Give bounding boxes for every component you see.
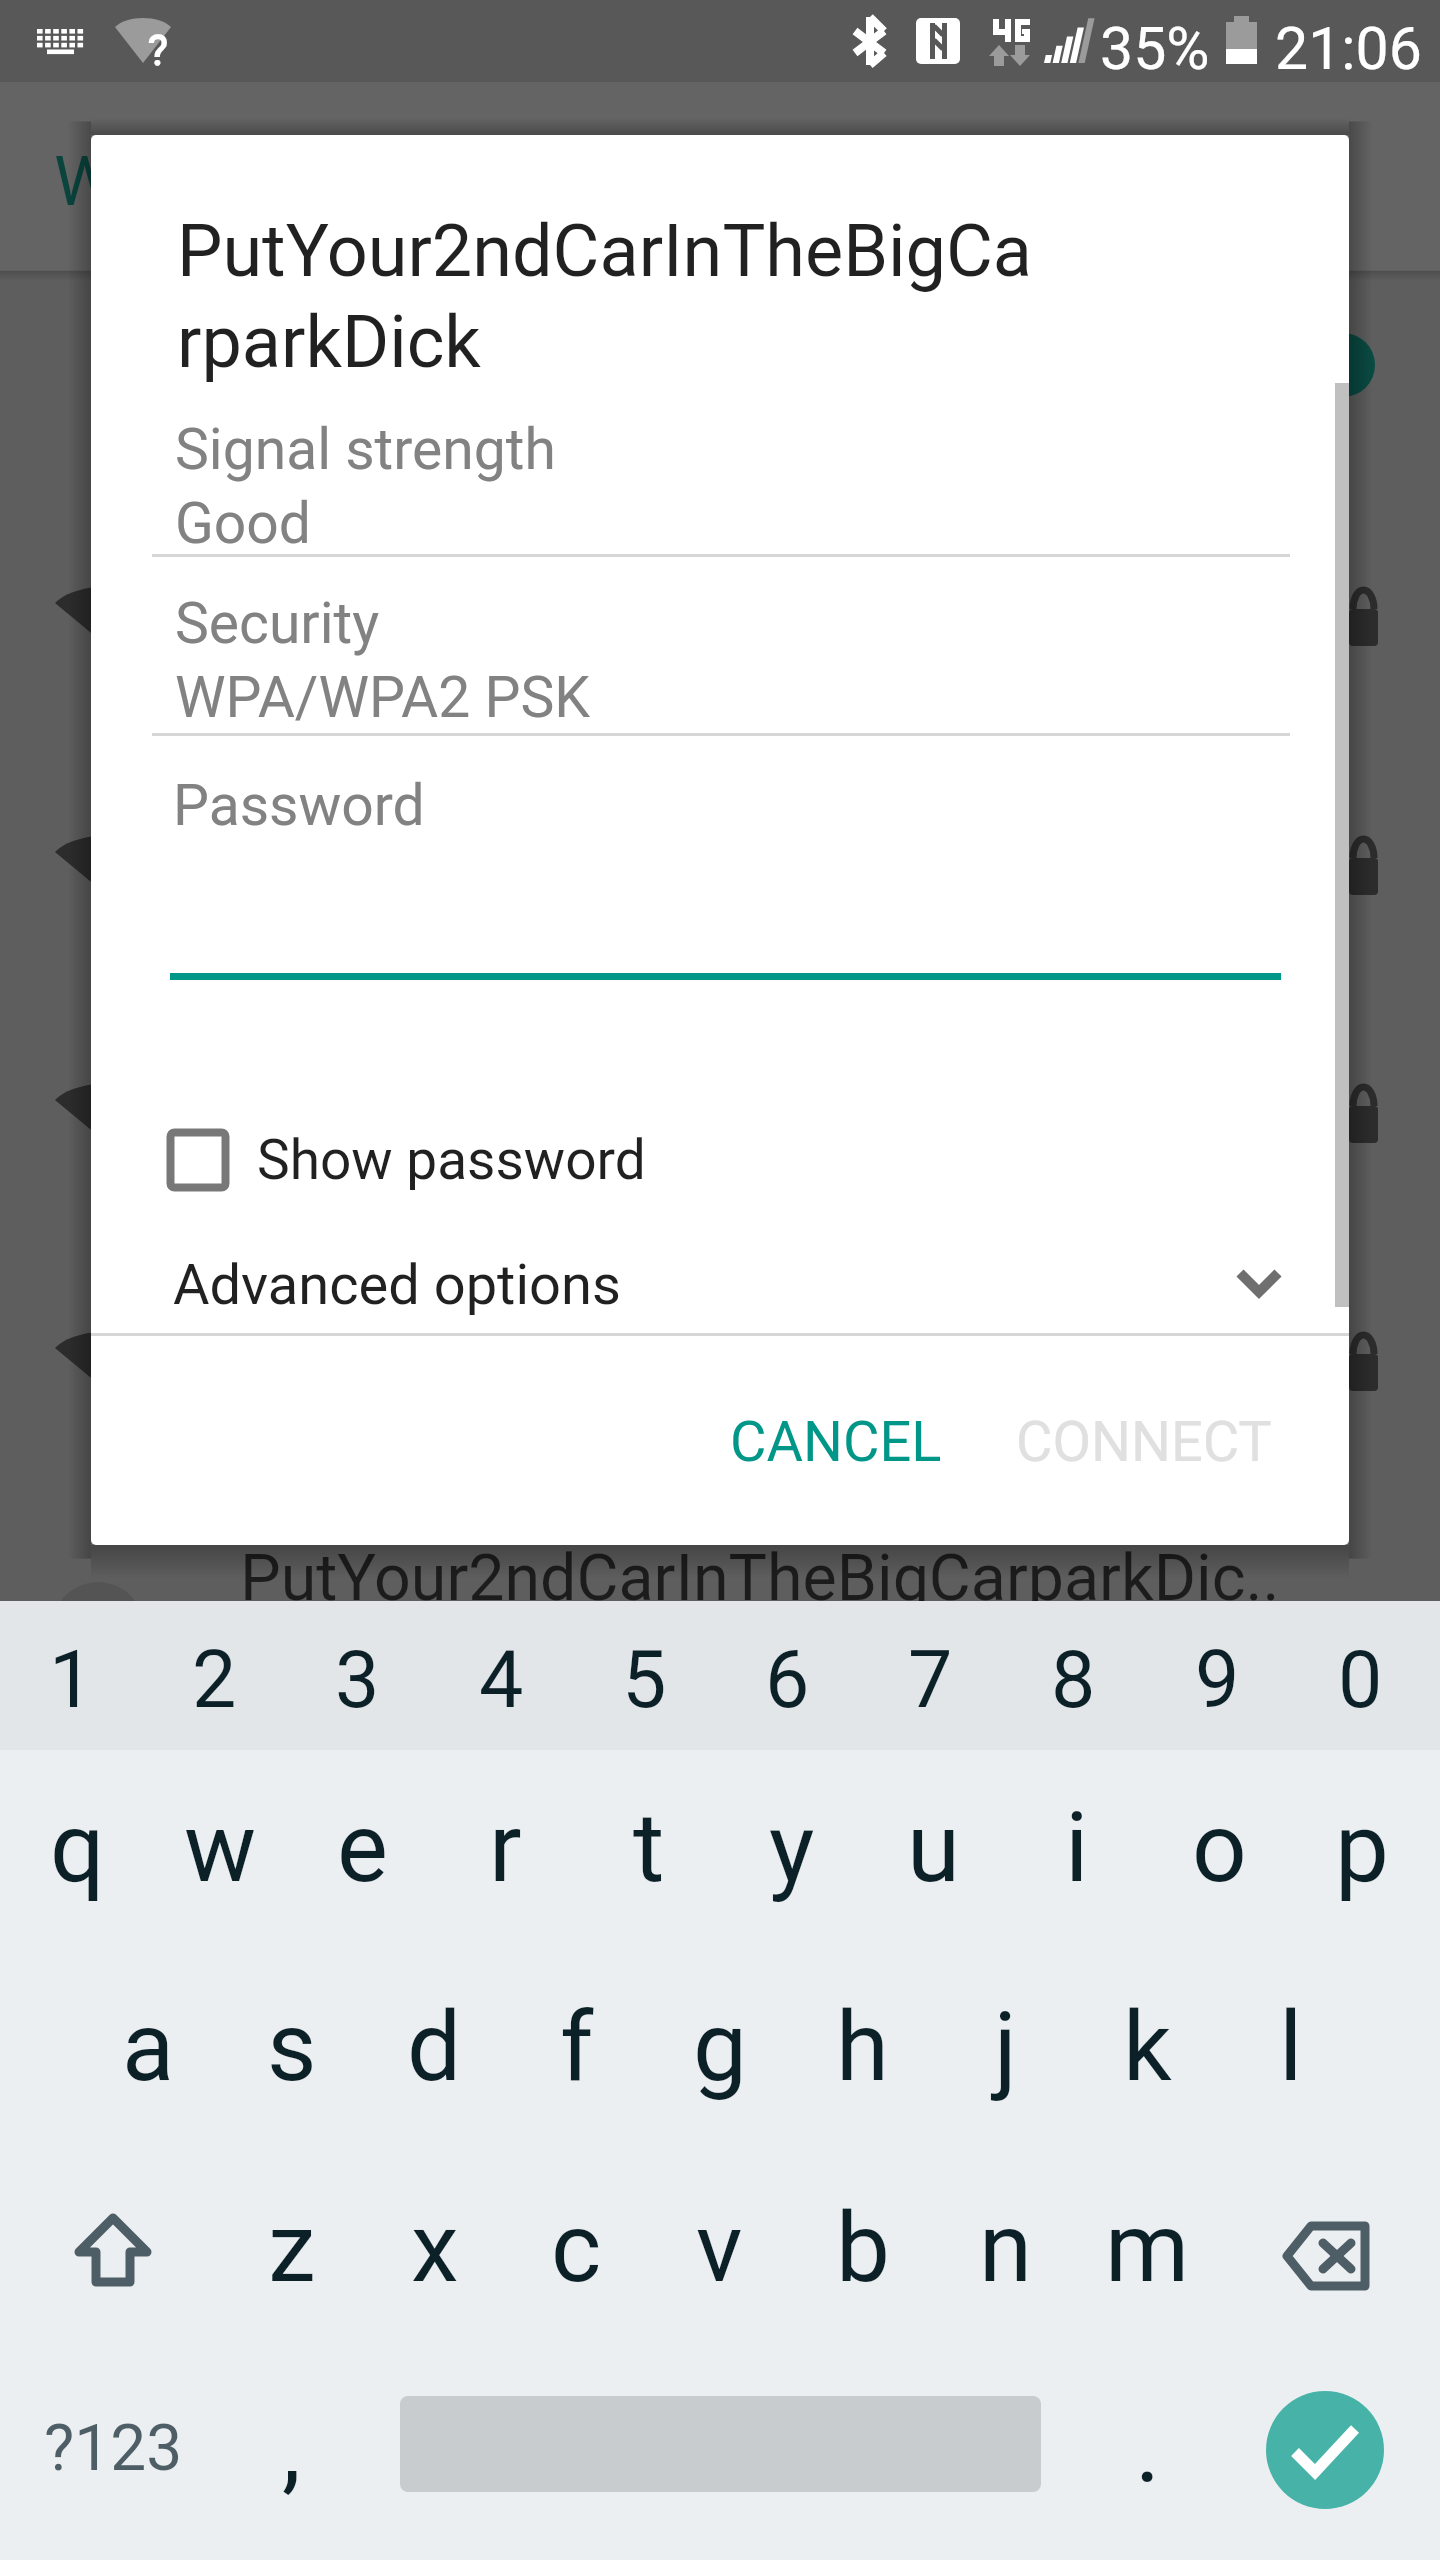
button[interactable]: 3 — [286, 1606, 429, 1755]
staticText: Password — [173, 772, 425, 839]
staticText: Advanced options — [173, 1252, 621, 1318]
staticText: WPA/WPA2 PSK — [175, 664, 591, 731]
button[interactable]: h — [791, 1947, 934, 2148]
button[interactable]: l — [1219, 1947, 1362, 2148]
button[interactable]: b — [791, 2148, 934, 2349]
button[interactable]: Enter — [1266, 2391, 1384, 2509]
staticText: s — [267, 1991, 317, 2104]
button[interactable]: 7 — [859, 1606, 1002, 1755]
staticText: 35% — [1100, 14, 1210, 83]
staticText: t — [633, 1792, 665, 1905]
button[interactable]: n — [934, 2148, 1077, 2349]
staticText: PutYour2ndCarInTheBigCarparkDic.. — [240, 1540, 1280, 1616]
staticText: ?123 — [44, 2411, 183, 2486]
button[interactable]: Wi-Fi network — [0, 989, 1440, 1237]
staticText: h — [836, 1991, 889, 2104]
button[interactable]: 8 — [1002, 1606, 1145, 1755]
staticText: Wi-Fi — [54, 142, 204, 222]
button[interactable]: q — [6, 1748, 149, 1949]
staticText: f — [560, 1991, 594, 2104]
staticText: j — [994, 1991, 1017, 2104]
staticText: c — [551, 2192, 602, 2305]
button[interactable]: Advanced options — [173, 1235, 1283, 1335]
staticText: g — [693, 1991, 747, 2104]
staticText: CANCEL — [730, 1409, 942, 1475]
staticText: d — [407, 1991, 462, 2104]
button[interactable]: e — [291, 1748, 434, 1949]
button[interactable]: 1 — [0, 1606, 143, 1755]
button[interactable]: s — [220, 1947, 363, 2148]
button[interactable]: 0 — [1289, 1606, 1432, 1755]
button[interactable]: Wi-Fi network — [0, 1485, 1440, 1733]
button[interactable]: Wi-Fi network — [0, 1237, 1440, 1485]
button[interactable]: o — [1148, 1748, 1291, 1949]
staticText: r — [489, 1792, 522, 1905]
staticText: 9 — [1195, 1634, 1240, 1727]
button[interactable]: 9 — [1146, 1606, 1289, 1755]
button[interactable]: p — [1290, 1748, 1433, 1949]
staticText: 1 — [49, 1634, 94, 1727]
button[interactable]: f — [505, 1947, 648, 2148]
staticText: k — [1123, 1991, 1172, 2104]
staticText: x — [411, 2192, 459, 2305]
staticText: . — [1135, 2392, 1161, 2505]
button[interactable]: Backspace — [1219, 2155, 1433, 2356]
button[interactable]: Wi-Fi network — [0, 741, 1440, 989]
button[interactable]: k — [1076, 1947, 1219, 2148]
button[interactable]: r — [434, 1748, 577, 1949]
button[interactable]: ?123 — [6, 2348, 220, 2549]
staticText: z — [268, 2192, 316, 2305]
staticText: Show password — [257, 1128, 646, 1192]
button[interactable]: Wi-Fi network — [0, 493, 1440, 741]
button[interactable]: g — [648, 1947, 791, 2148]
button[interactable]: d — [363, 1947, 506, 2148]
staticText: ? — [148, 26, 168, 75]
staticText: a — [122, 1991, 175, 2104]
button[interactable]: Wi-Fi settings — [0, 82, 1440, 270]
button[interactable]: t — [577, 1748, 720, 1949]
button[interactable]: 4 — [430, 1606, 573, 1755]
button[interactable]: v — [648, 2148, 791, 2349]
button[interactable]: y — [720, 1748, 863, 1949]
button[interactable]: x — [363, 2148, 506, 2349]
button[interactable]: CANCEL — [706, 1387, 965, 1497]
staticText: m — [1105, 2192, 1190, 2305]
staticText: 8 — [1051, 1634, 1096, 1727]
button[interactable]: Shift — [6, 2149, 220, 2350]
staticText: o — [1192, 1792, 1247, 1905]
staticText: u — [907, 1792, 960, 1905]
button[interactable]: i — [1005, 1748, 1148, 1949]
staticText: 21:06 — [1275, 14, 1422, 83]
button[interactable]: . — [1076, 2348, 1219, 2549]
button[interactable]: Show password — [167, 1105, 767, 1215]
staticText: v — [696, 2192, 743, 2305]
staticText: 6 — [765, 1634, 810, 1727]
button[interactable]: m — [1076, 2148, 1219, 2349]
staticText: 0 — [1338, 1634, 1383, 1727]
button[interactable]: , — [220, 2348, 363, 2549]
staticText: Security — [175, 590, 380, 657]
button[interactable]: j — [934, 1947, 1077, 2148]
button[interactable]: a — [77, 1947, 220, 2148]
button[interactable]: CONNECT — [993, 1387, 1295, 1497]
button[interactable]: z — [220, 2148, 363, 2349]
button[interactable]: u — [862, 1748, 1005, 1949]
staticText: PutYour2ndCarInTheBigCa rparkDick — [177, 209, 1032, 385]
button[interactable]: 5 — [573, 1606, 716, 1755]
staticText: 4 — [479, 1634, 524, 1727]
staticText: i — [1065, 1792, 1089, 1905]
staticText: q — [50, 1792, 105, 1905]
button[interactable]: w — [149, 1748, 292, 1949]
button[interactable]: 6 — [716, 1606, 859, 1755]
button[interactable]: c — [505, 2148, 648, 2349]
staticText: b — [836, 2192, 890, 2305]
staticText: l — [1279, 1991, 1303, 2104]
staticText: CONNECT — [1016, 1409, 1272, 1475]
staticText: 2 — [192, 1634, 237, 1727]
staticText: w — [184, 1792, 257, 1905]
button[interactable]: 2 — [143, 1606, 286, 1755]
staticText: y — [769, 1792, 815, 1905]
staticText: 3 — [335, 1634, 380, 1727]
staticText: , — [282, 2392, 301, 2505]
